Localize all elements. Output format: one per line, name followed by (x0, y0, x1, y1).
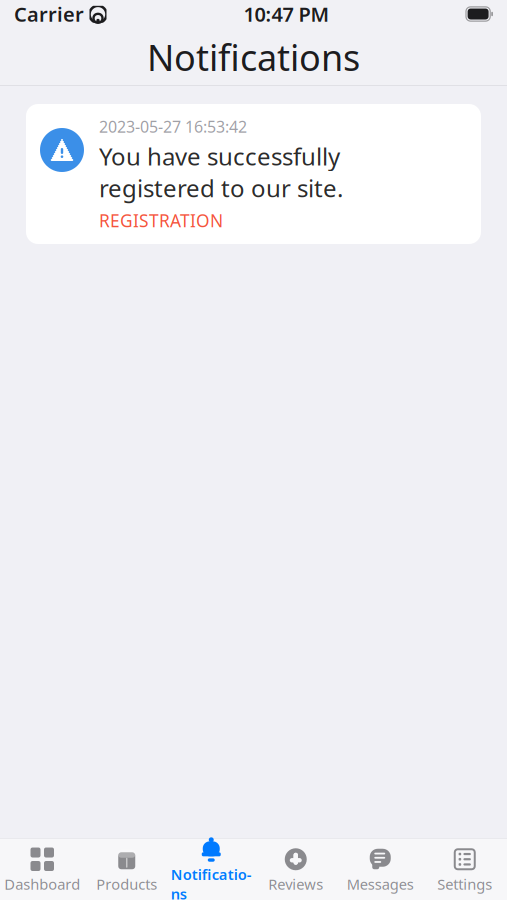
staticText: Notifications (147, 33, 360, 81)
staticText: Carrier (14, 1, 84, 27)
button[interactable]: Messages (338, 839, 422, 900)
staticText: 10:47 PM (243, 1, 329, 27)
button[interactable]: Reviews (253, 839, 338, 900)
staticText: Dashboard (4, 874, 80, 894)
staticText: REGISTRATION (99, 209, 223, 232)
button[interactable]: 2023-05-27 16:53:42 (26, 104, 481, 244)
staticText: Products (96, 874, 157, 894)
staticText: Settings (437, 874, 492, 894)
button[interactable]: Notifications (169, 829, 253, 900)
staticText: Messages (347, 874, 414, 894)
staticText: Notifications (171, 864, 252, 900)
button[interactable]: Settings (422, 839, 507, 900)
staticText: Reviews (268, 874, 323, 894)
button[interactable]: Products (84, 839, 169, 900)
button[interactable]: Dashboard (0, 839, 84, 900)
staticText: 2023-05-27 16:53:42 (99, 116, 247, 137)
staticText: You have successfully registered to our … (99, 140, 343, 204)
